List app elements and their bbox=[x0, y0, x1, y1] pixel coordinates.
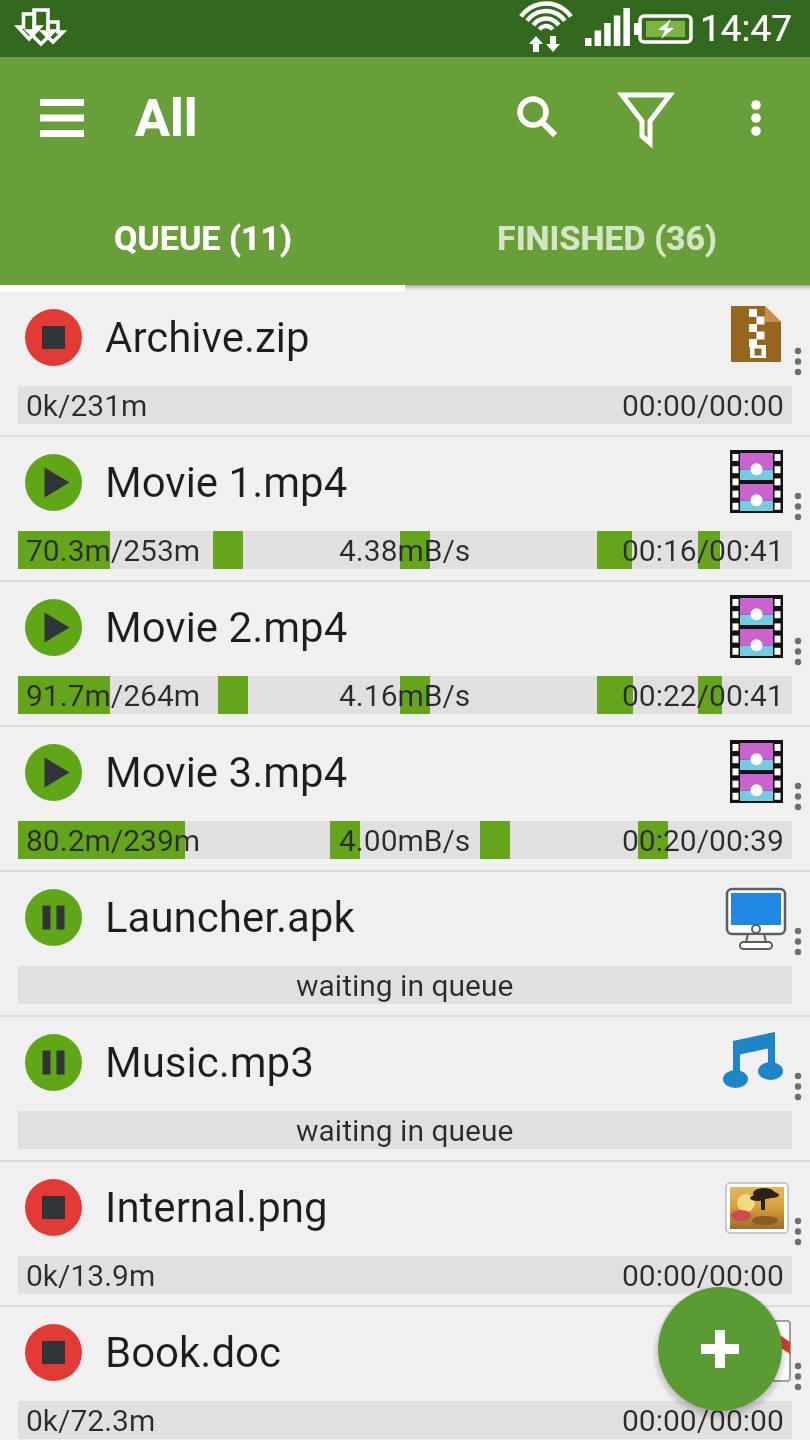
staticText: 00:20/00:39 bbox=[622, 823, 784, 858]
staticText: 70.3m/253m bbox=[26, 533, 201, 568]
staticText: Movie 1.mp4 bbox=[105, 458, 348, 507]
staticText: waiting in queue bbox=[296, 1113, 514, 1148]
button[interactable] bbox=[786, 779, 810, 819]
button[interactable] bbox=[722, 85, 790, 151]
button[interactable] bbox=[786, 1359, 810, 1399]
button[interactable]: Archive.zip bbox=[0, 290, 810, 435]
button[interactable] bbox=[658, 1287, 782, 1411]
staticText: 14:47 bbox=[700, 7, 793, 50]
staticText: waiting in queue bbox=[296, 968, 514, 1003]
button[interactable] bbox=[786, 344, 810, 384]
button[interactable]: FINISHED (36) bbox=[405, 190, 810, 285]
button[interactable] bbox=[786, 634, 810, 674]
button[interactable] bbox=[786, 924, 810, 964]
staticText: Movie 3.mp4 bbox=[105, 748, 348, 797]
staticText: 00:00/00:00 bbox=[622, 1258, 784, 1293]
staticText: 80.2m/239m bbox=[26, 823, 201, 858]
button[interactable]: Music.mp3 bbox=[0, 1015, 810, 1160]
button[interactable] bbox=[503, 85, 571, 151]
staticText: 0k/13.9m bbox=[26, 1258, 156, 1293]
button[interactable]: Launcher.apk bbox=[0, 870, 810, 1015]
staticText: 00:22/00:41 bbox=[622, 678, 784, 713]
button[interactable] bbox=[786, 1214, 810, 1254]
staticText: All bbox=[135, 88, 198, 149]
staticText: Archive.zip bbox=[105, 313, 310, 362]
staticText: 00:16/00:41 bbox=[622, 533, 784, 568]
button[interactable]: Movie 1.mp4 bbox=[0, 435, 810, 580]
staticText: Book.doc bbox=[105, 1328, 282, 1377]
staticText: 4.38mB/s bbox=[339, 533, 471, 568]
staticText: 91.7m/264m bbox=[26, 678, 201, 713]
staticText: 00:00/00:00 bbox=[622, 388, 784, 423]
button[interactable] bbox=[612, 85, 680, 151]
staticText: 4.16mB/s bbox=[339, 678, 471, 713]
button[interactable]: Movie 2.mp4 bbox=[0, 580, 810, 725]
staticText: Internal.png bbox=[105, 1183, 328, 1232]
staticText: FINISHED (36) bbox=[497, 218, 718, 258]
button[interactable]: Internal.png bbox=[0, 1160, 810, 1305]
button[interactable]: QUEUE (11) bbox=[0, 190, 405, 285]
staticText: Music.mp3 bbox=[105, 1038, 314, 1087]
button[interactable] bbox=[786, 489, 810, 529]
staticText: 00:00/00:00 bbox=[622, 1403, 784, 1438]
staticText: 4.00mB/s bbox=[339, 823, 471, 858]
button[interactable] bbox=[786, 1069, 810, 1109]
button[interactable] bbox=[28, 85, 96, 151]
staticText: QUEUE (11) bbox=[114, 218, 292, 258]
button[interactable]: Movie 3.mp4 bbox=[0, 725, 810, 870]
staticText: 0k/231m bbox=[26, 388, 148, 423]
button[interactable]: Book.doc bbox=[0, 1305, 810, 1440]
staticText: Movie 2.mp4 bbox=[105, 603, 348, 652]
staticText: Launcher.apk bbox=[105, 893, 355, 942]
staticText: 0k/72.3m bbox=[26, 1403, 156, 1438]
